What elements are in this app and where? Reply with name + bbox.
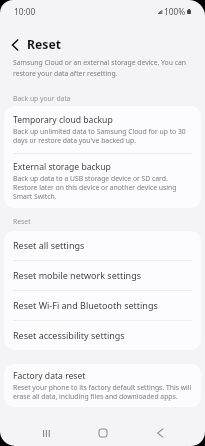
staticText: External storage backup — [13, 162, 111, 172]
button[interactable]: External storage backup — [4, 154, 201, 208]
button[interactable]: Reset Wi-Fi and Bluetooth settings — [4, 291, 201, 320]
staticText: Reset all settings — [13, 239, 85, 251]
staticText: Reset your phone to its factory default … — [13, 383, 192, 401]
button[interactable]: Back — [146, 419, 174, 446]
staticText: 100% — [164, 6, 186, 17]
staticText: Reset — [27, 36, 61, 53]
staticText: Reset mobile network settings — [13, 269, 141, 281]
staticText: Reset Wi-Fi and Bluetooth settings — [13, 299, 158, 311]
staticText: Back up data to a USB storage device or … — [13, 174, 192, 201]
button[interactable]: Temporary cloud backup — [4, 106, 201, 153]
button[interactable]: Reset accessibility settings — [4, 321, 201, 350]
staticText: Reset accessibility settings — [13, 329, 125, 341]
button[interactable]: Navigate up — [5, 35, 25, 55]
staticText: 10:00 — [14, 6, 36, 17]
button[interactable]: Reset all settings — [4, 231, 201, 260]
staticText: Temporary cloud backup — [13, 115, 113, 125]
staticText: Back up your data — [13, 96, 71, 103]
staticText: Factory data reset — [13, 371, 86, 381]
staticText: Back up unlimited data to Samsung Cloud … — [13, 127, 192, 145]
button[interactable]: Home — [89, 419, 117, 446]
button[interactable]: Factory data reset — [4, 364, 201, 407]
button[interactable]: Recent apps — [32, 419, 60, 446]
staticText: Samsung Cloud or an external storage dev… — [13, 57, 187, 79]
button[interactable]: Reset mobile network settings — [4, 261, 201, 290]
staticText: Reset — [13, 219, 31, 226]
